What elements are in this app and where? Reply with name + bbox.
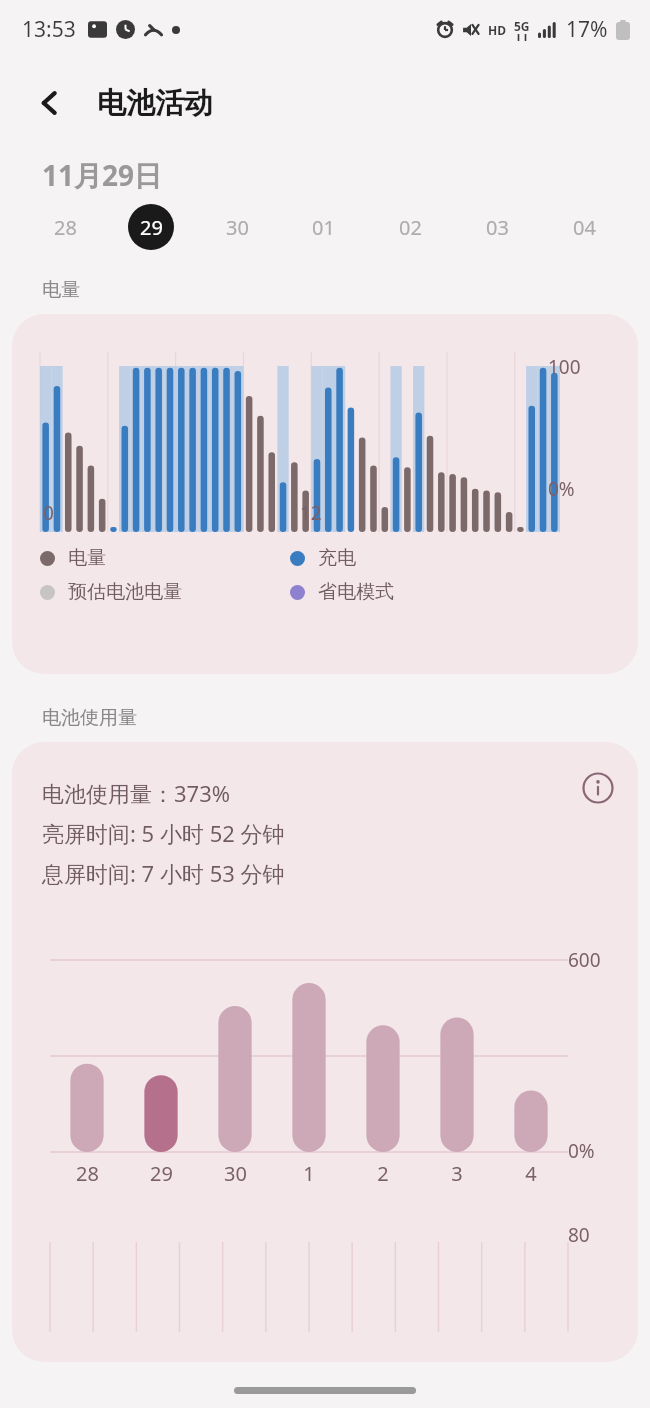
button[interactable]: 28 <box>22 194 108 260</box>
staticText: 0% <box>548 476 575 502</box>
staticText: 28 <box>76 1160 99 1187</box>
staticText: 4 <box>525 1160 537 1187</box>
staticText: 12 <box>300 500 322 526</box>
staticText: 息屏时间: 7 小时 53 分钟 <box>42 858 285 888</box>
staticText: 0% <box>568 1138 595 1164</box>
staticText: 充电 <box>318 546 356 570</box>
staticText: 02 <box>399 214 422 241</box>
staticText: 电池活动 <box>97 85 213 122</box>
staticText: 100 <box>548 354 581 380</box>
staticText: 29 <box>140 214 163 241</box>
staticText: 省电模式 <box>318 580 394 604</box>
button[interactable]: 电池使用量：373% <box>12 742 638 1362</box>
staticText: 01 <box>312 214 335 241</box>
button[interactable]: 30 <box>194 194 280 260</box>
button[interactable]: 04 <box>541 194 628 260</box>
staticText: 1 <box>303 1160 315 1187</box>
staticText: 电池使用量 <box>42 706 137 730</box>
button[interactable]: 03 <box>454 194 541 260</box>
button[interactable]: 信息 <box>574 764 622 812</box>
staticText: 3 <box>451 1160 463 1187</box>
button[interactable]: 返回 <box>26 79 74 127</box>
staticText: HD <box>488 22 506 38</box>
staticText: 600 <box>568 947 601 973</box>
staticText: 亮屏时间: 5 小时 52 分钟 <box>42 818 285 848</box>
staticText: 30 <box>224 1160 247 1187</box>
button[interactable]: 01 <box>280 194 367 260</box>
button[interactable]: 02 <box>367 194 454 260</box>
staticText: 5G <box>514 18 530 34</box>
staticText: 0 <box>43 500 54 526</box>
staticText: 28 <box>54 214 77 241</box>
staticText: 30 <box>226 214 249 241</box>
button[interactable]: 100 <box>12 314 638 674</box>
staticText: 电池使用量：373% <box>42 778 231 808</box>
staticText: 17% <box>566 15 608 44</box>
staticText: 预估电池电量 <box>68 580 182 604</box>
staticText: 2 <box>377 1160 389 1187</box>
staticText: 80 <box>568 1222 590 1248</box>
staticText: 11月29日 <box>42 156 163 194</box>
staticText: 电量 <box>42 278 80 302</box>
button[interactable]: 29 <box>108 194 194 260</box>
staticText: 电量 <box>68 546 106 570</box>
staticText: 29 <box>150 1160 173 1187</box>
staticText: 13:53 <box>22 15 76 44</box>
staticText: 04 <box>573 214 596 241</box>
staticText: 03 <box>486 214 509 241</box>
